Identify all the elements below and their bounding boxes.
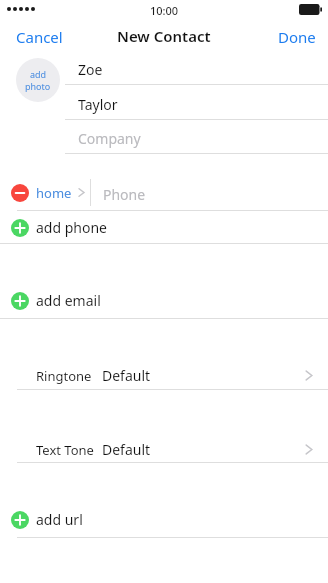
button[interactable]: Ringtone [0, 362, 328, 388]
button[interactable]: Text Tone [0, 436, 328, 462]
staticText: Cancel [16, 27, 63, 47]
staticText: Ringtone [36, 367, 92, 385]
staticText: photo [25, 80, 51, 92]
staticText: Done [278, 27, 316, 47]
staticText: Zoe [78, 60, 103, 79]
staticText: add email [36, 291, 101, 310]
staticText: add url [36, 510, 83, 529]
button[interactable]: add photo [16, 58, 60, 102]
staticText: Default [102, 366, 151, 385]
button[interactable]: add url [0, 508, 328, 531]
staticText: New Contact [117, 26, 211, 46]
other: Remove phone [11, 184, 29, 202]
button[interactable]: add phone [0, 216, 328, 239]
staticText: add [30, 68, 47, 80]
staticText: Taylor [78, 95, 118, 114]
staticText: Default [102, 440, 151, 459]
button[interactable]: Done [266, 22, 328, 52]
staticText: home [36, 184, 72, 202]
staticText: Text Tone [36, 441, 94, 459]
staticText: Company [78, 129, 141, 148]
staticText: Phone [103, 185, 146, 204]
button[interactable]: add email [0, 289, 328, 312]
button[interactable]: Cancel [4, 22, 75, 52]
staticText: add phone [36, 218, 107, 237]
button[interactable]: Remove phone [0, 181, 328, 204]
staticText: 10:00 [150, 3, 179, 18]
